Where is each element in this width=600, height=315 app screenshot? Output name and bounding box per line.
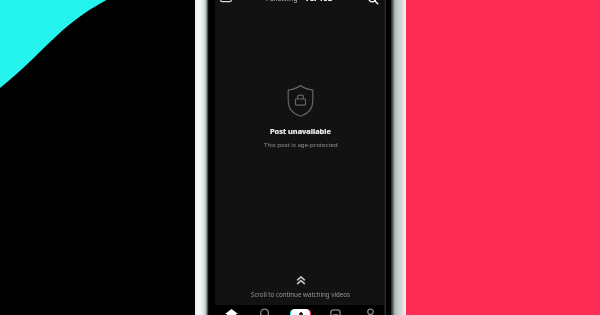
button[interactable]: Following — [266, 0, 298, 4]
button[interactable]: Create — [286, 305, 314, 315]
button[interactable]: Discover — [251, 305, 279, 315]
button[interactable]: Home — [217, 305, 245, 315]
staticText: Scroll to continue watching videos — [251, 290, 350, 298]
staticText: This post is age-protected — [264, 140, 338, 148]
button[interactable]: For You — [306, 0, 333, 4]
button[interactable]: Profile — [356, 305, 384, 315]
button[interactable]: Search — [367, 0, 379, 5]
staticText: Post unavailable — [270, 126, 331, 136]
button[interactable]: Inbox — [321, 305, 349, 315]
button[interactable]: LIVE — [220, 0, 232, 4]
